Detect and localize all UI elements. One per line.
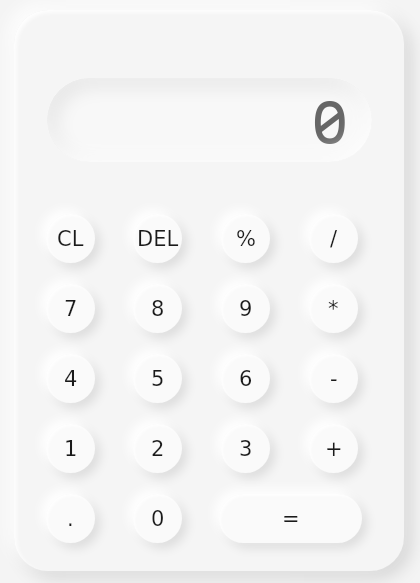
staticText: /	[330, 227, 338, 251]
staticText: 0	[312, 92, 348, 153]
button[interactable]: *	[309, 284, 358, 333]
staticText: +	[325, 437, 343, 461]
button[interactable]: 9	[221, 284, 270, 333]
button[interactable]: 6	[221, 354, 270, 403]
button[interactable]: 5	[133, 354, 182, 403]
button[interactable]: =	[219, 494, 362, 543]
staticText: 5	[151, 367, 165, 391]
staticText: 1	[64, 437, 78, 461]
staticText: 0	[151, 507, 165, 531]
staticText: 2	[151, 437, 165, 461]
staticText: 6	[239, 367, 253, 391]
staticText: %	[236, 227, 256, 251]
button[interactable]: .	[46, 494, 95, 543]
staticText: 3	[239, 437, 253, 461]
staticText: =	[282, 507, 300, 531]
button[interactable]: %	[221, 214, 270, 263]
button[interactable]: 2	[133, 424, 182, 473]
staticText: DEL	[137, 227, 179, 251]
button[interactable]: 1	[46, 424, 95, 473]
button[interactable]: 8	[133, 284, 182, 333]
button[interactable]: 7	[46, 284, 95, 333]
button[interactable]: CL	[46, 214, 95, 263]
button[interactable]: DEL	[133, 214, 182, 263]
staticText: *	[328, 297, 339, 321]
button[interactable]: -	[309, 354, 358, 403]
button[interactable]: Result display, 0	[47, 78, 372, 162]
staticText: .	[67, 507, 74, 531]
button[interactable]: /	[309, 214, 358, 263]
staticText: CL	[57, 227, 84, 251]
button[interactable]: 0	[133, 494, 182, 543]
staticText: 4	[64, 367, 78, 391]
button[interactable]: +	[309, 424, 358, 473]
staticText: 8	[151, 297, 165, 321]
button[interactable]: 4	[46, 354, 95, 403]
staticText: 9	[239, 297, 253, 321]
staticText: 7	[64, 297, 78, 321]
staticText: -	[330, 367, 338, 391]
button[interactable]: 3	[221, 424, 270, 473]
